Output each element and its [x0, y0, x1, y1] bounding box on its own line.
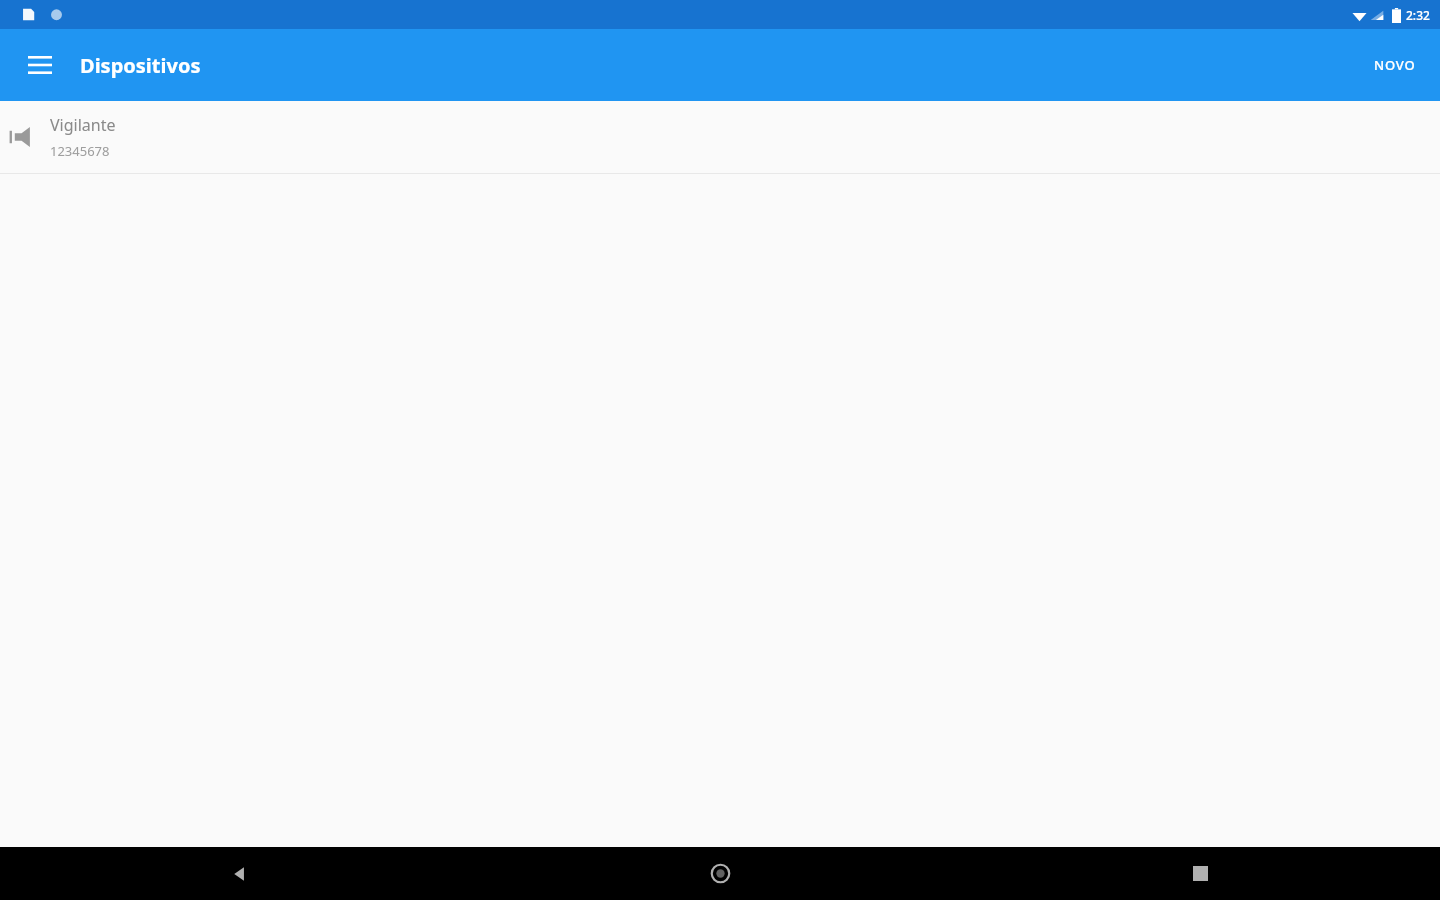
button[interactable]: Vigilante	[0, 101, 1440, 173]
staticText: Dispositivos	[80, 52, 201, 79]
staticText: 2:32	[1406, 7, 1430, 23]
button[interactable]: NOVO	[1360, 46, 1430, 84]
staticText: NOVO	[1374, 56, 1416, 74]
staticText: 12345678	[50, 142, 110, 160]
button[interactable]: Open navigation menu	[16, 41, 64, 89]
button[interactable]: Home	[480, 847, 960, 900]
button[interactable]: Recent apps	[960, 847, 1440, 900]
staticText: Vigilante	[50, 114, 116, 136]
button[interactable]: Back	[0, 847, 480, 900]
